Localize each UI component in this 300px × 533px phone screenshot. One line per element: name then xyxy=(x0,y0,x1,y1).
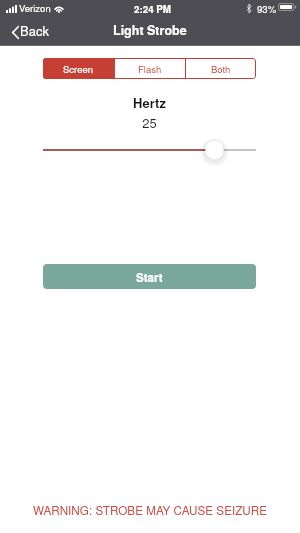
staticText: Screen xyxy=(63,62,94,76)
button[interactable]: Back xyxy=(0,17,59,45)
staticText: WARNING: STROBE MAY CAUSE SEIZURE xyxy=(0,502,300,519)
button[interactable] xyxy=(43,140,256,160)
button[interactable]: Start xyxy=(43,264,256,289)
button[interactable]: Flash xyxy=(115,58,185,79)
staticText: Start xyxy=(136,269,163,285)
staticText: Flash xyxy=(138,62,162,76)
button[interactable]: Screen xyxy=(43,58,114,79)
staticText: 25 xyxy=(43,113,256,132)
staticText: 93% xyxy=(257,2,277,16)
staticText: Hertz xyxy=(43,93,256,112)
staticText: 2:24 PM xyxy=(134,2,172,16)
staticText: Light Strobe xyxy=(113,21,187,39)
staticText: Both xyxy=(211,62,231,76)
staticText: Back xyxy=(20,21,49,40)
button[interactable]: Both xyxy=(186,58,256,79)
staticText: Verizon xyxy=(19,1,51,15)
